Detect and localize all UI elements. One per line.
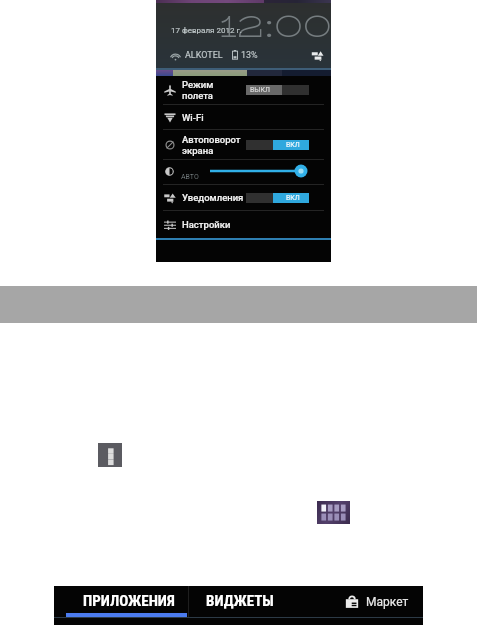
staticText: Уведомления bbox=[182, 192, 244, 203]
button[interactable]: ПРИЛОЖЕНИЯ bbox=[54, 586, 188, 618]
staticText: Настройки bbox=[182, 219, 231, 230]
staticText: 17 февраля 2012 г. bbox=[171, 26, 242, 35]
staticText: Wi-Fi bbox=[182, 112, 204, 123]
button[interactable]: Quick settings bbox=[311, 49, 324, 62]
button[interactable]: ВИДЖЕТЫ bbox=[189, 586, 302, 618]
button[interactable]: ВЫКЛ bbox=[246, 85, 309, 95]
button[interactable]: Режим полета bbox=[164, 76, 309, 104]
staticText: 12:00 bbox=[219, 0, 332, 51]
staticText: АВТО bbox=[181, 173, 199, 181]
staticText: ВИДЖЕТЫ bbox=[206, 592, 274, 610]
staticText: Маркет bbox=[366, 595, 409, 609]
button[interactable]: ВКЛ bbox=[246, 140, 309, 150]
staticText: Режим полета bbox=[182, 79, 214, 101]
button[interactable]: All apps bbox=[317, 501, 350, 524]
button[interactable]: Маркет bbox=[345, 587, 409, 619]
button[interactable]: АВТО bbox=[156, 160, 331, 184]
button[interactable]: More options bbox=[98, 443, 122, 467]
staticText: ВЫКЛ bbox=[250, 86, 270, 94]
staticText: ALKOTEL bbox=[185, 50, 223, 61]
button[interactable]: Wi-Fi bbox=[164, 105, 309, 129]
button[interactable]: Настройки bbox=[164, 211, 309, 238]
button[interactable]: Автоповорот экрана bbox=[164, 130, 309, 159]
staticText: ВКЛ bbox=[286, 194, 300, 202]
staticText: Автоповорот экрана bbox=[182, 134, 241, 156]
staticText: ВКЛ bbox=[286, 141, 300, 149]
button[interactable]: Уведомления bbox=[164, 185, 309, 210]
button[interactable]: ВКЛ bbox=[246, 193, 309, 203]
staticText: 13% bbox=[241, 50, 258, 61]
staticText: ПРИЛОЖЕНИЯ bbox=[83, 592, 175, 610]
